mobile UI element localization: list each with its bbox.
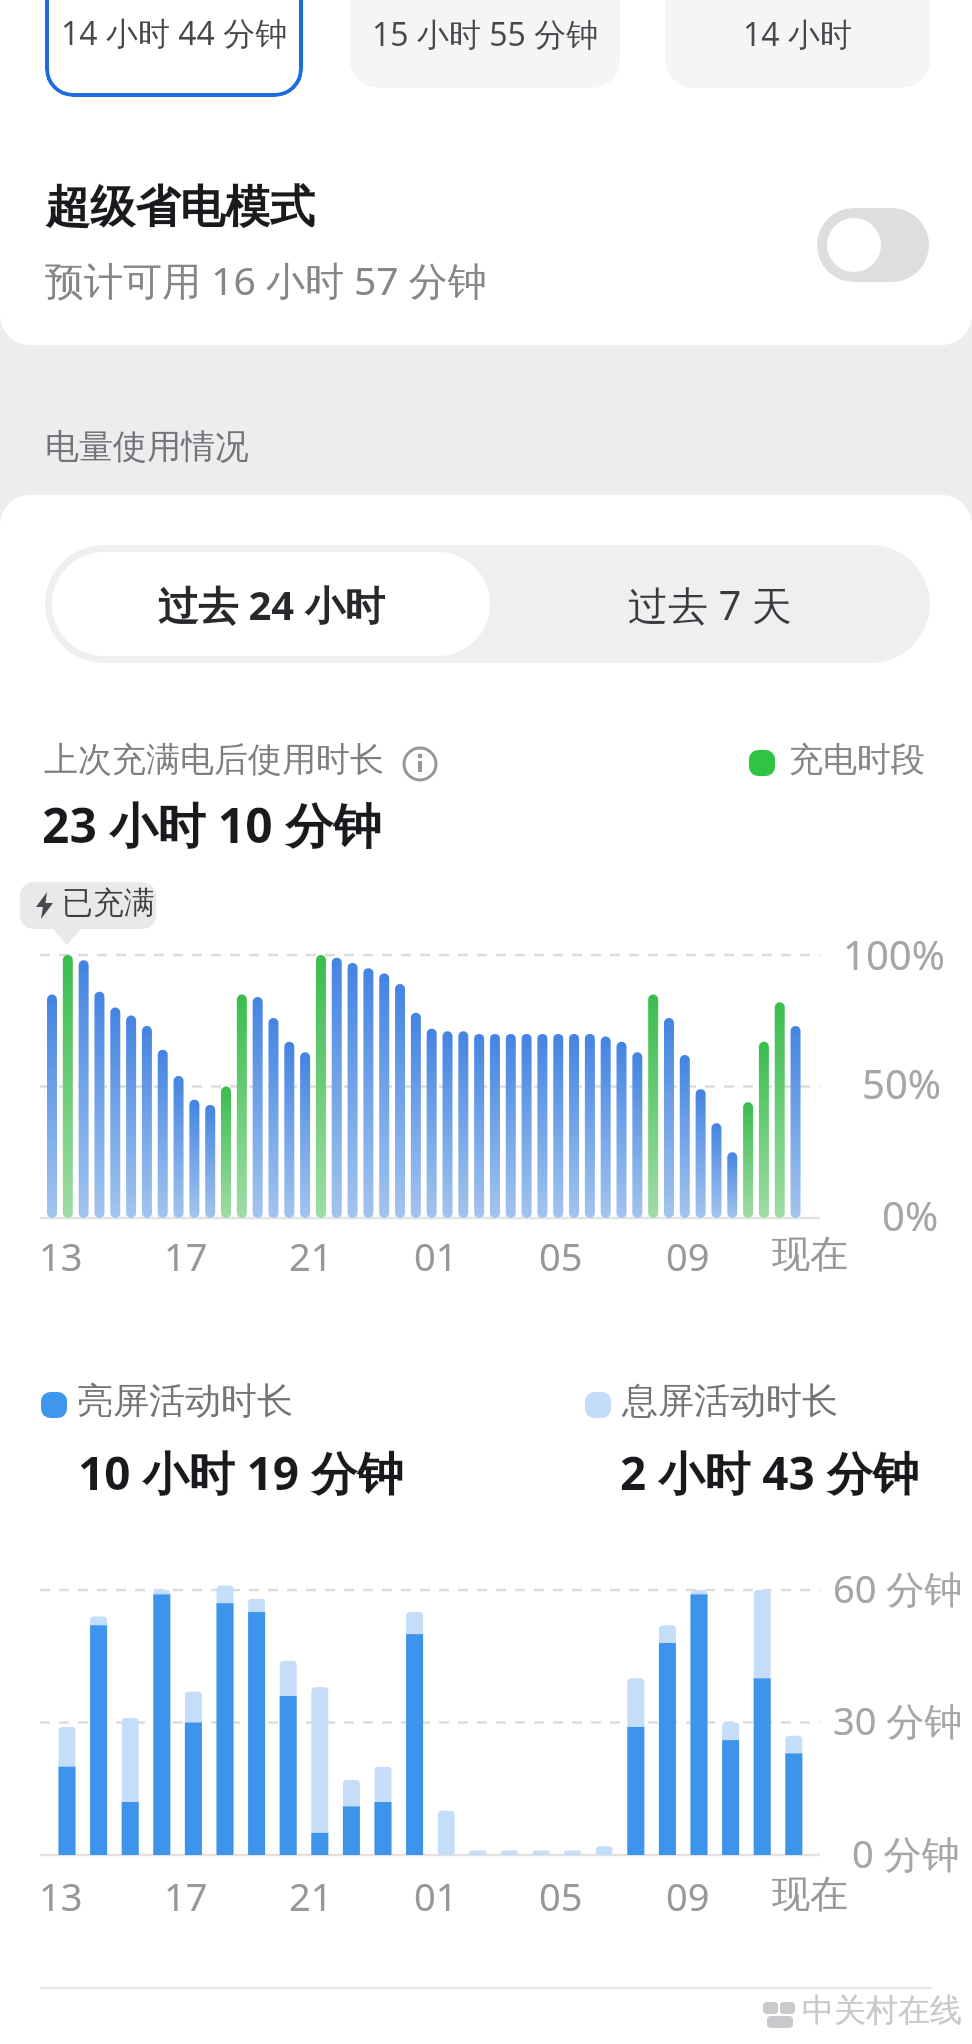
button[interactable]: 14 小时 <box>665 0 930 88</box>
staticText: 01 <box>414 1870 458 1922</box>
staticText: 充电时段 <box>789 738 925 781</box>
button[interactable]: 15 小时 55 分钟 <box>350 0 620 88</box>
button[interactable]: 过去 24 小时 <box>52 552 490 656</box>
staticText: 已充满 <box>62 883 155 922</box>
staticText: 13 <box>39 1230 83 1282</box>
staticText: 预计可用 16 小时 57 分钟 <box>45 253 487 306</box>
staticText: 21 <box>289 1230 333 1282</box>
staticText: 01 <box>414 1230 458 1282</box>
staticText: 17 <box>164 1230 208 1282</box>
staticText: 电量使用情况 <box>45 425 249 468</box>
staticText: 100% <box>843 927 945 981</box>
staticText: 05 <box>539 1870 583 1922</box>
staticText: 23 小时 10 分钟 <box>42 792 382 858</box>
staticText: 50% <box>862 1056 941 1110</box>
staticText: 10 小时 19 分钟 <box>78 1441 404 1504</box>
staticText: 超级省电模式 <box>45 179 315 236</box>
staticText: 过去 24 小时 <box>158 577 385 632</box>
staticText: 09 <box>666 1870 710 1922</box>
staticText: 05 <box>539 1230 583 1282</box>
staticText: 21 <box>289 1870 333 1922</box>
button[interactable]: 14 小时 44 分钟 <box>45 0 303 97</box>
staticText: 13 <box>39 1870 83 1922</box>
staticText: 14 小时 44 分钟 <box>61 11 288 55</box>
staticText: 现在 <box>772 1230 848 1278</box>
staticText: 中关村在线 <box>802 1990 962 2030</box>
button[interactable] <box>817 208 929 282</box>
staticText: 14 小时 <box>743 12 852 56</box>
staticText: 09 <box>666 1230 710 1282</box>
staticText: 60 分钟 <box>833 1562 963 1614</box>
staticText: 亮屏活动时长 <box>77 1378 293 1423</box>
staticText: 2 小时 43 分钟 <box>620 1441 919 1504</box>
button[interactable]: 过去 7 天 <box>490 545 930 663</box>
staticText: 15 小时 55 分钟 <box>372 12 599 56</box>
staticText: 0% <box>882 1188 939 1242</box>
staticText: 30 分钟 <box>833 1694 963 1746</box>
staticText: 过去 7 天 <box>628 577 792 632</box>
staticText: 现在 <box>772 1870 848 1918</box>
staticText: 息屏活动时长 <box>622 1378 838 1423</box>
staticText: 17 <box>164 1870 208 1922</box>
staticText: 上次充满电后使用时长 <box>44 738 384 781</box>
staticText: 0 分钟 <box>852 1827 960 1879</box>
